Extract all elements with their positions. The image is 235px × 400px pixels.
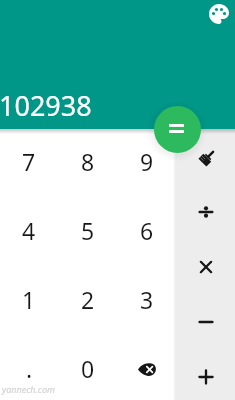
button[interactable]: 4	[0, 197, 58, 266]
staticText: .	[26, 353, 33, 384]
button[interactable]: Subtract	[176, 295, 235, 350]
button[interactable]: 9	[117, 128, 176, 197]
button[interactable]: 0	[58, 335, 117, 400]
staticText: 8	[81, 146, 95, 177]
staticText: yannech.com	[2, 383, 55, 395]
button[interactable]: Add	[176, 350, 235, 400]
button[interactable]: Divide	[176, 185, 235, 240]
staticText: 2	[81, 284, 95, 315]
staticText: 0	[81, 353, 95, 384]
button[interactable]: 2	[58, 266, 117, 335]
staticText: 1	[22, 284, 36, 315]
button[interactable]: Equals	[154, 106, 201, 153]
button[interactable]: 5	[58, 197, 117, 266]
button[interactable]: 7	[0, 128, 58, 197]
button[interactable]: Clear all	[176, 130, 235, 185]
staticText: 9	[140, 146, 154, 177]
staticText: 7	[22, 146, 36, 177]
button[interactable]: Multiply	[176, 240, 235, 295]
button[interactable]: .	[0, 335, 58, 400]
staticText: 5	[81, 215, 95, 246]
button[interactable]: Change theme	[208, 3, 229, 24]
staticText: 4	[22, 215, 36, 246]
button[interactable]: 8	[58, 128, 117, 197]
staticText: 102938	[0, 87, 92, 124]
staticText: 3	[140, 284, 154, 315]
staticText: 6	[140, 215, 154, 246]
other: Backspace	[138, 363, 156, 376]
button[interactable]: 6	[117, 197, 176, 266]
button[interactable]: Backspace	[117, 335, 176, 400]
button[interactable]: 1	[0, 266, 58, 335]
button[interactable]: 3	[117, 266, 176, 335]
